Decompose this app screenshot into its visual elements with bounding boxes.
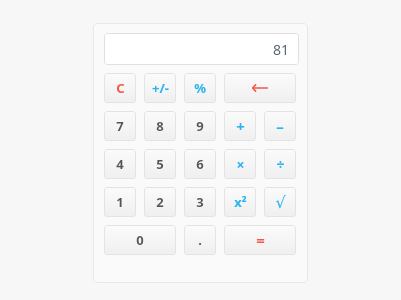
button[interactable]: 8 bbox=[144, 111, 176, 141]
staticText: √ bbox=[275, 193, 286, 212]
staticText: 2 bbox=[156, 193, 164, 211]
button[interactable]: √ bbox=[264, 187, 296, 217]
staticText: C bbox=[116, 79, 125, 97]
button[interactable]: C bbox=[104, 73, 136, 103]
button[interactable]: 7 bbox=[104, 111, 136, 141]
button[interactable]: 3 bbox=[184, 187, 216, 217]
staticText: 8 bbox=[156, 117, 164, 135]
button[interactable]: + bbox=[224, 111, 256, 141]
button[interactable]: % bbox=[184, 73, 216, 103]
button[interactable]: . bbox=[184, 225, 216, 255]
staticText: x² bbox=[234, 193, 247, 211]
staticText: 9 bbox=[196, 117, 204, 135]
button[interactable]: – bbox=[264, 111, 296, 141]
button[interactable]: 4 bbox=[104, 149, 136, 179]
staticText: 7 bbox=[116, 117, 124, 135]
staticText: = bbox=[256, 230, 265, 250]
staticText: 6 bbox=[196, 155, 204, 173]
staticText: 3 bbox=[196, 193, 204, 211]
button[interactable]: 0 bbox=[104, 225, 176, 255]
button[interactable]: = bbox=[224, 225, 296, 255]
button[interactable]: 81 bbox=[104, 33, 299, 65]
staticText: . bbox=[198, 231, 202, 249]
button[interactable]: Backspace bbox=[224, 73, 296, 103]
staticText: % bbox=[194, 79, 206, 97]
staticText: – bbox=[276, 116, 284, 136]
button[interactable]: 2 bbox=[144, 187, 176, 217]
staticText: 81 bbox=[273, 40, 290, 59]
staticText: 4 bbox=[116, 155, 124, 173]
button[interactable]: × bbox=[224, 149, 256, 179]
staticText: +/- bbox=[152, 79, 169, 97]
staticText: 1 bbox=[116, 193, 124, 211]
staticText: ÷ bbox=[276, 155, 285, 174]
button[interactable]: ÷ bbox=[264, 149, 296, 179]
button[interactable]: 5 bbox=[144, 149, 176, 179]
staticText: × bbox=[236, 155, 245, 174]
staticText: + bbox=[236, 116, 245, 136]
staticText: 0 bbox=[136, 231, 144, 249]
button[interactable]: 9 bbox=[184, 111, 216, 141]
button[interactable]: x² bbox=[224, 187, 256, 217]
button[interactable]: 6 bbox=[184, 149, 216, 179]
staticText: 5 bbox=[156, 155, 164, 173]
button[interactable]: +/- bbox=[144, 73, 176, 103]
button[interactable]: 1 bbox=[104, 187, 136, 217]
